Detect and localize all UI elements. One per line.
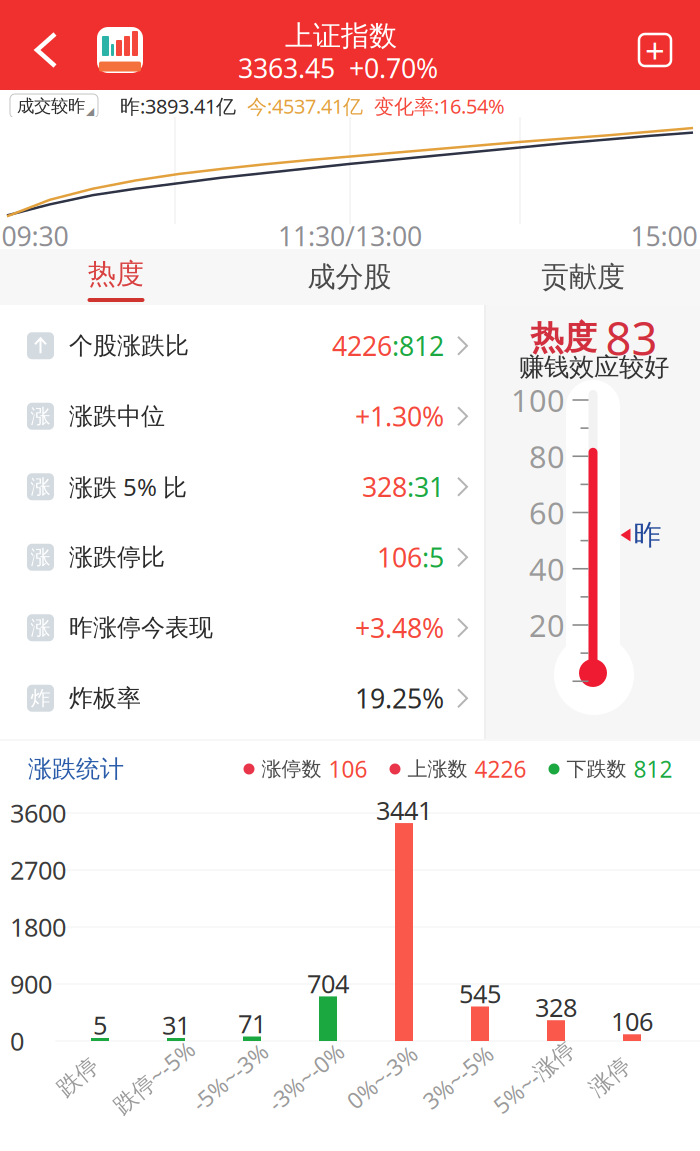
staticText: 328 bbox=[362, 469, 407, 504]
staticText: 106 bbox=[328, 754, 367, 784]
staticText: 赚钱效应较好 bbox=[519, 351, 669, 382]
staticText: 5 bbox=[93, 1008, 107, 1042]
staticText: 昨:3893.41亿 bbox=[120, 93, 236, 119]
button[interactable]: 成交较昨 bbox=[10, 94, 98, 118]
staticText: 545 bbox=[459, 977, 501, 1010]
staticText: 4226 bbox=[332, 328, 392, 363]
staticText: :5 bbox=[422, 539, 444, 575]
staticText: 11:30/13:00 bbox=[278, 218, 422, 254]
staticText: 0%~-3% bbox=[340, 1062, 424, 1092]
staticText: 热度 bbox=[530, 317, 596, 358]
staticText: 成交较昨 bbox=[17, 95, 85, 117]
staticText: 83 bbox=[605, 308, 657, 368]
button[interactable]: 贡献度 bbox=[466, 249, 700, 305]
staticText: 涨停数 bbox=[261, 757, 321, 781]
staticText: 涨跌中位 bbox=[69, 401, 165, 431]
staticText: 跌停 bbox=[55, 1063, 101, 1091]
staticText: 704 bbox=[307, 967, 349, 1000]
staticText: 炸板率 bbox=[69, 683, 141, 713]
staticText: -3%~-0% bbox=[260, 1062, 351, 1092]
staticText: 涨跌 5% 比 bbox=[69, 471, 187, 503]
staticText: 贡献度 bbox=[541, 260, 625, 294]
button[interactable]: 涨 bbox=[0, 522, 484, 592]
staticText: 今:4537.41亿 bbox=[247, 93, 363, 119]
button[interactable]: Add to watchlist bbox=[627, 22, 683, 78]
staticText: 900 bbox=[10, 967, 52, 1001]
button[interactable]: 成分股 bbox=[233, 249, 466, 305]
staticText: 涨跌统计 bbox=[28, 754, 124, 784]
staticText: 变化率:16.54% bbox=[374, 93, 505, 119]
staticText: 106 bbox=[611, 1004, 653, 1038]
staticText: + bbox=[645, 27, 665, 73]
staticText: 60 bbox=[529, 492, 565, 533]
staticText: 3441 bbox=[376, 793, 432, 827]
staticText: 40 bbox=[529, 548, 565, 589]
staticText: ◢ bbox=[86, 105, 94, 117]
staticText: 涨 bbox=[30, 615, 50, 640]
staticText: 5%~-涨停 bbox=[485, 1062, 583, 1092]
staticText: 涨跌停比 bbox=[69, 542, 165, 572]
staticText: :812 bbox=[392, 328, 444, 363]
staticText: 3363.45 +0.70% bbox=[238, 50, 438, 86]
button[interactable]: 热度 bbox=[0, 249, 233, 305]
button[interactable]: 涨 bbox=[0, 381, 484, 451]
staticText: 19.25% bbox=[355, 680, 444, 716]
staticText: 上证指数 bbox=[285, 19, 397, 53]
button[interactable]: 炸 bbox=[0, 663, 484, 733]
staticText: 昨涨停今表现 bbox=[69, 613, 213, 642]
button[interactable]: Back bbox=[9, 5, 83, 94]
staticText: 昨 bbox=[633, 518, 661, 552]
staticText: -5%~-3% bbox=[184, 1062, 275, 1092]
staticText: 跌停~-5% bbox=[105, 1062, 203, 1092]
staticText: 上涨数 bbox=[407, 757, 467, 781]
staticText: 09:30 bbox=[1, 218, 68, 254]
staticText: 个股涨跌比 bbox=[69, 331, 189, 360]
staticText: 2700 bbox=[10, 853, 66, 887]
staticText: 328 bbox=[535, 990, 577, 1024]
button[interactable]: 涨 bbox=[0, 592, 484, 663]
staticText: +1.30% bbox=[355, 398, 444, 434]
staticText: 下跌数 bbox=[566, 757, 626, 781]
button[interactable]: 涨 bbox=[0, 451, 484, 522]
staticText: 热度 bbox=[88, 257, 144, 291]
staticText: 成分股 bbox=[307, 260, 391, 294]
staticText: 71 bbox=[238, 1007, 266, 1040]
staticText: 0 bbox=[10, 1024, 24, 1058]
staticText: 3600 bbox=[10, 796, 66, 830]
staticText: 涨 bbox=[30, 474, 50, 499]
button[interactable]: Short-line King bbox=[90, 20, 150, 80]
staticText: 涨 bbox=[30, 404, 50, 429]
staticText: 涨 bbox=[30, 545, 50, 570]
staticText: 3%~-5% bbox=[416, 1062, 500, 1092]
staticText: 20 bbox=[529, 605, 565, 645]
staticText: 1800 bbox=[10, 910, 66, 944]
staticText: 15:00 bbox=[630, 218, 697, 254]
staticText: 80 bbox=[529, 436, 565, 477]
staticText: :31 bbox=[407, 469, 444, 504]
staticText: 4226 bbox=[474, 754, 526, 784]
button[interactable]: 个股涨跌比 bbox=[0, 310, 484, 381]
staticText: 812 bbox=[633, 754, 672, 784]
staticText: +3.48% bbox=[355, 610, 444, 645]
staticText: 106 bbox=[377, 539, 422, 575]
staticText: 31 bbox=[162, 1008, 190, 1042]
staticText: 涨停 bbox=[587, 1063, 633, 1091]
staticText: 炸 bbox=[30, 686, 50, 711]
staticText: 100 bbox=[511, 380, 565, 420]
